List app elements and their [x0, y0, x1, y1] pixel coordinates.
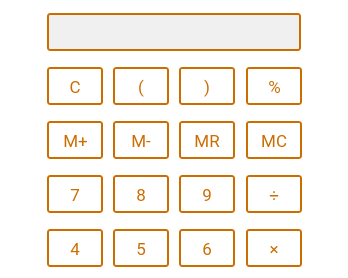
staticText: C [69, 77, 81, 97]
button[interactable]: Memory subtract [113, 121, 169, 159]
button[interactable]: Clear [47, 67, 103, 105]
staticText: 8 [136, 185, 146, 205]
button[interactable]: Expression field [47, 13, 301, 51]
button[interactable]: Seven [47, 175, 103, 213]
button[interactable]: Memory clear [246, 121, 302, 159]
button[interactable]: Five [113, 229, 169, 267]
button[interactable]: Four [47, 229, 103, 267]
button[interactable]: Memory add [47, 121, 103, 159]
button[interactable]: Nine [179, 175, 235, 213]
staticText: M+ [63, 131, 88, 151]
button[interactable]: Eight [113, 175, 169, 213]
staticText: 6 [202, 239, 212, 259]
staticText: 5 [136, 239, 146, 259]
staticText: M- [131, 131, 151, 151]
staticText: 7 [70, 185, 80, 205]
staticText: × [269, 239, 279, 259]
button[interactable]: Divide [246, 175, 302, 213]
button[interactable]: Multiply [246, 229, 302, 267]
staticText: ÷ [269, 185, 279, 205]
button[interactable]: Memory recall [179, 121, 235, 159]
staticText: 9 [202, 185, 212, 205]
button[interactable]: Open bracket [113, 67, 169, 105]
button[interactable]: Close bracket [179, 67, 235, 105]
button[interactable]: Six [179, 229, 235, 267]
staticText: MC [261, 131, 287, 151]
button[interactable]: Percent [246, 67, 302, 105]
staticText: ) [204, 77, 210, 97]
staticText: 4 [70, 239, 80, 259]
staticText: % [268, 77, 281, 97]
staticText: ( [138, 77, 144, 97]
staticText: MR [194, 131, 220, 151]
